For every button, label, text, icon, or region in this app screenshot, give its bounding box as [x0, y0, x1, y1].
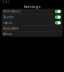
staticText: ıl ▮: [60, 1, 61, 3]
staticText: Haptics: [3, 21, 12, 24]
staticText: 9:41: [2, 0, 9, 4]
staticText: Notifications: [3, 10, 20, 13]
button[interactable]: About: [1, 31, 62, 37]
button[interactable]: Notifications: [1, 9, 62, 14]
button[interactable]: Sounds: [1, 14, 62, 20]
staticText: Sounds: [3, 15, 13, 19]
button[interactable]: Haptics: [1, 20, 62, 25]
staticText: Appearance: [3, 27, 19, 30]
staticText: About: [3, 32, 12, 36]
button[interactable]: Appearance: [1, 26, 62, 31]
staticText: Settings: [23, 4, 40, 9]
